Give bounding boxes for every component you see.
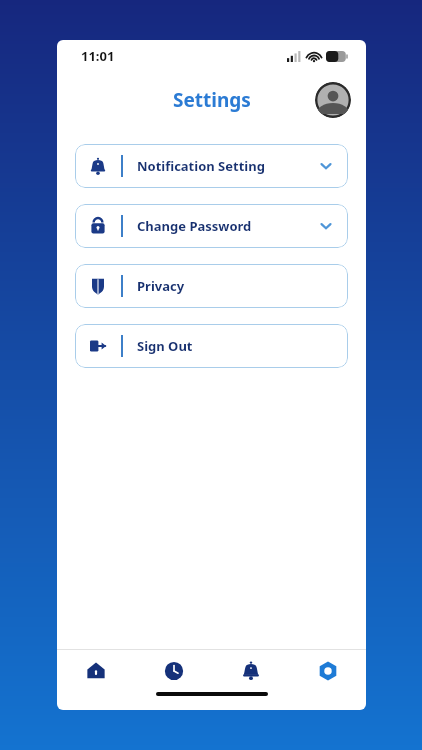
staticText: Change Password (137, 217, 252, 235)
button[interactable]: Home (57, 650, 135, 692)
staticText: 11:01 (81, 47, 115, 65)
button[interactable]: Sign Out (75, 324, 348, 368)
staticText: Notification Setting (137, 157, 265, 175)
button[interactable]: Profile (315, 82, 351, 118)
button[interactable]: Change Password (75, 204, 348, 248)
button[interactable]: History (135, 650, 212, 692)
button[interactable]: Privacy (75, 264, 348, 308)
button[interactable]: Notifications (212, 650, 289, 692)
staticText: Settings (173, 87, 251, 113)
staticText: Sign Out (137, 337, 193, 355)
button[interactable]: Notification Setting (75, 144, 348, 188)
staticText: Privacy (137, 277, 185, 295)
button[interactable]: Settings (289, 650, 366, 692)
